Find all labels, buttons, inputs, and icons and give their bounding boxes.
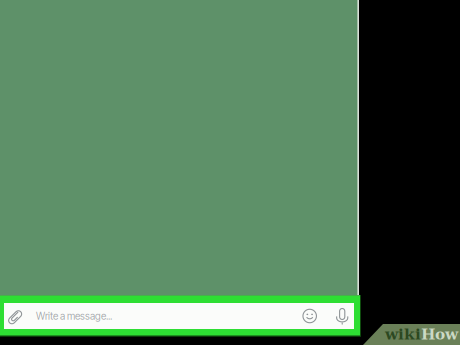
staticText: Write a message... xyxy=(36,310,112,322)
button[interactable]: Write a message... xyxy=(36,303,304,329)
button[interactable]: Emoji xyxy=(298,303,322,329)
button[interactable]: Record voice message xyxy=(330,303,354,329)
staticText: wiki xyxy=(385,325,421,343)
staticText: How xyxy=(421,325,458,343)
button[interactable]: Attach file xyxy=(4,305,26,331)
